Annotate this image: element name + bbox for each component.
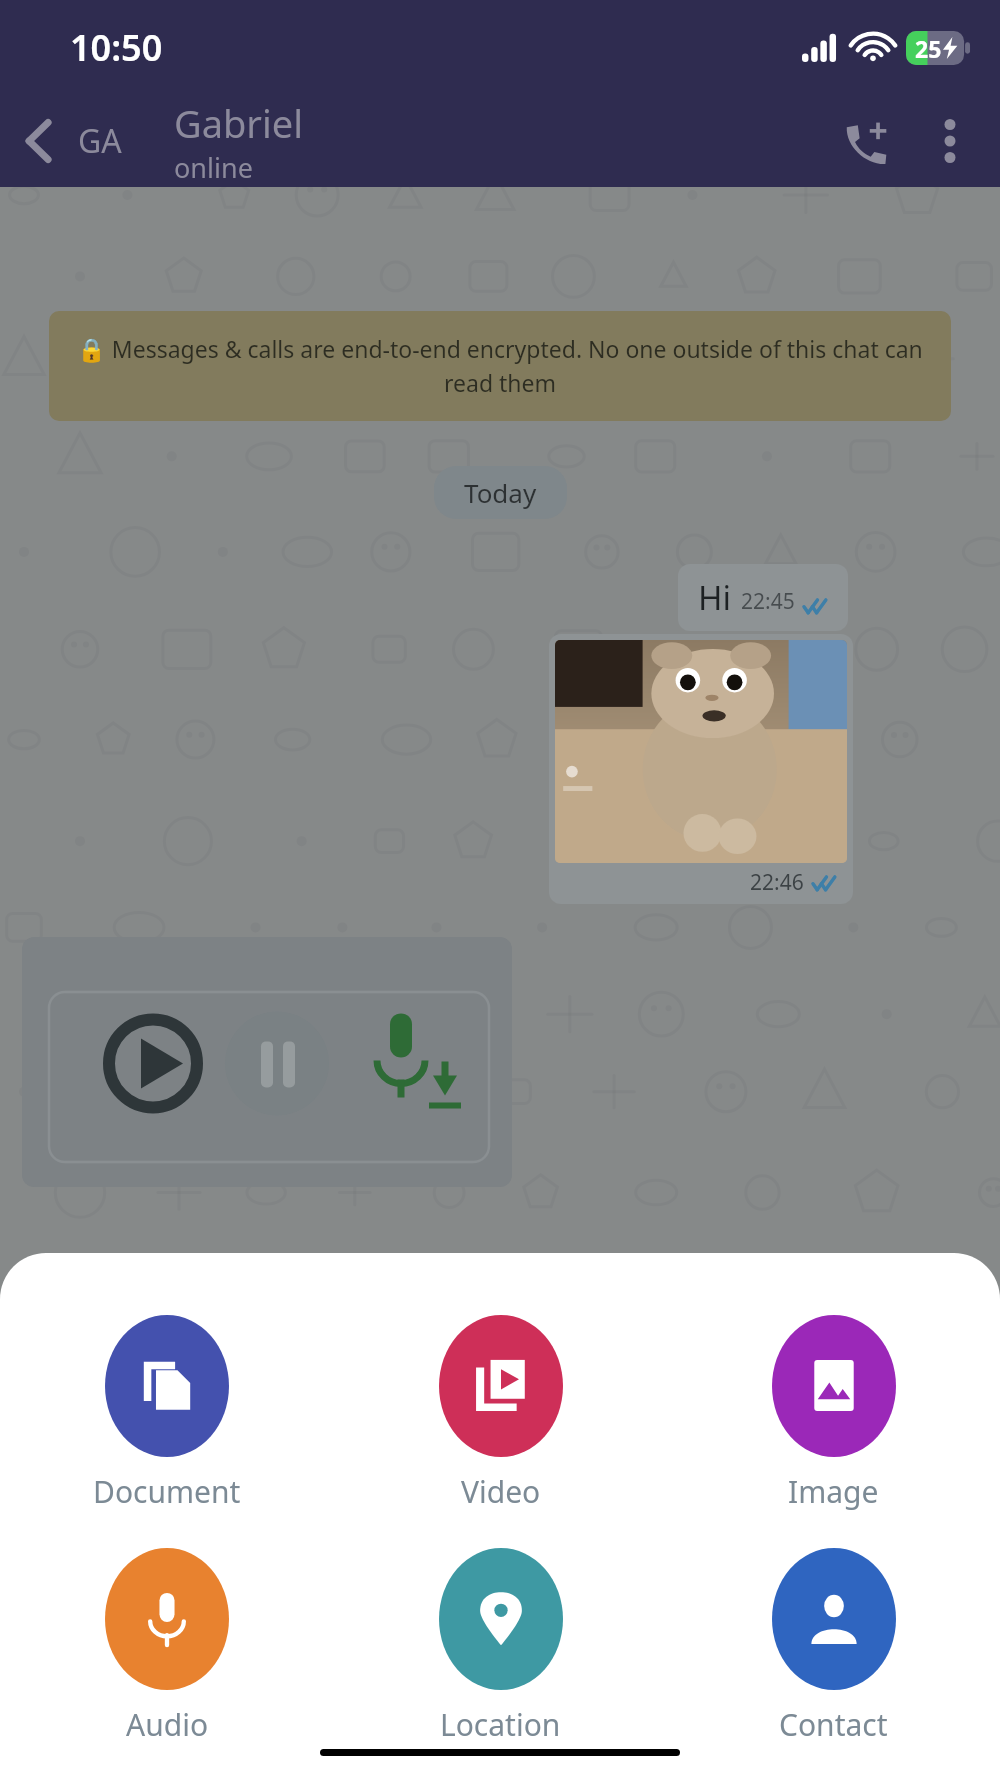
staticText: Video [461, 1471, 541, 1512]
staticText: Location [440, 1704, 561, 1745]
staticText: 22:46 [750, 868, 804, 897]
staticText: Audio [126, 1704, 209, 1745]
staticText: Today [464, 475, 537, 510]
staticText: Contact [779, 1704, 888, 1745]
staticText: 🔒 Messages & calls are end-to-end encryp… [69, 333, 931, 399]
button[interactable]: Back [0, 102, 78, 180]
staticText: Document [93, 1471, 241, 1512]
button[interactable]: Document [0, 1311, 334, 1516]
staticText: Image [788, 1471, 879, 1512]
button[interactable]: Audio [0, 1544, 334, 1749]
button[interactable]: More options [910, 101, 990, 181]
button[interactable]: Video [334, 1311, 667, 1516]
button[interactable]: Gabriel [174, 97, 824, 186]
staticText: 22:45 [741, 587, 795, 616]
staticText: 25 [915, 33, 942, 64]
staticText: 10:50 [70, 23, 163, 72]
button[interactable]: Add call [824, 98, 910, 184]
staticText: GA [78, 119, 122, 163]
button[interactable]: Location [334, 1544, 667, 1749]
staticText: Gabriel [174, 97, 304, 149]
button[interactable]: Contact [667, 1544, 1000, 1749]
staticText: Hi [698, 575, 731, 620]
button[interactable]: Image [667, 1311, 1000, 1516]
staticText: online [174, 149, 253, 186]
